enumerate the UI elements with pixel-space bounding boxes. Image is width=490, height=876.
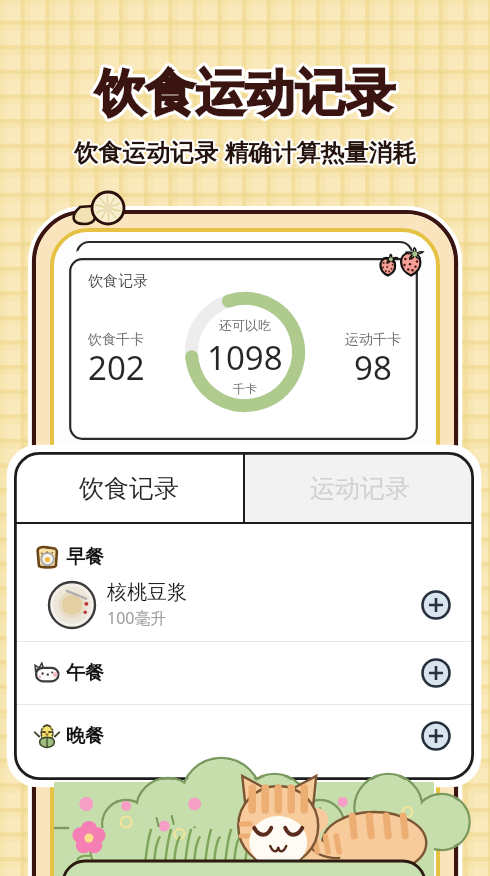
- staticText: 饮食运动记录: [98, 62, 398, 125]
- staticText: 饮食运动记录: [92, 62, 392, 125]
- staticText: 202: [88, 345, 145, 390]
- staticText: 饮食运动记录: [95, 62, 395, 125]
- staticText: 饮食运动记录: [93, 64, 393, 127]
- staticText: 饮食运动记录: [95, 60, 395, 123]
- staticText: 运动记录: [310, 473, 410, 504]
- staticText: 饮食运动记录 精确计算热量消耗: [74, 135, 417, 168]
- staticText: 饮食运动记录 精确计算热量消耗: [74, 137, 417, 170]
- button[interactable]: 核桃豆浆: [48, 573, 452, 636]
- staticText: 饮食运动记录 精确计算热量消耗: [74, 135, 417, 168]
- staticText: 饮食运动记录: [97, 62, 397, 125]
- staticText: 饮食运动记录: [95, 62, 395, 125]
- staticText: 还可以吃: [219, 317, 271, 333]
- staticText: 饮食运动记录 精确计算热量消耗: [74, 134, 417, 167]
- staticText: 饮食运动记录 精确计算热量消耗: [73, 136, 416, 169]
- staticText: 饮食运动记录: [95, 64, 395, 127]
- button[interactable]: Add: [420, 657, 452, 689]
- staticText: 运动千卡: [345, 331, 401, 349]
- staticText: 饮食运动记录: [97, 63, 397, 126]
- staticText: 饮食运动记录: [96, 61, 396, 124]
- staticText: 饮食记录: [88, 272, 148, 291]
- staticText: 1098: [207, 335, 283, 380]
- staticText: 晚餐: [66, 724, 104, 748]
- staticText: 饮食运动记录 精确计算热量消耗: [75, 134, 418, 167]
- staticText: 饮食运动记录: [93, 60, 393, 123]
- staticText: 饮食运动记录: [95, 65, 395, 128]
- staticText: 饮食运动记录 精确计算热量消耗: [72, 135, 415, 168]
- staticText: 饮食运动记录: [96, 62, 396, 125]
- button[interactable]: 运动记录: [245, 452, 474, 522]
- staticText: 饮食运动记录: [95, 61, 395, 124]
- staticText: 饮食运动记录 精确计算热量消耗: [73, 134, 416, 167]
- staticText: 饮食运动记录: [96, 63, 396, 126]
- staticText: 饮食运动记录: [97, 61, 397, 124]
- staticText: 饮食运动记录: [94, 62, 394, 125]
- staticText: 饮食运动记录 精确计算热量消耗: [74, 136, 417, 169]
- staticText: 饮食运动记录 精确计算热量消耗: [75, 136, 418, 169]
- button[interactable]: Add: [420, 720, 452, 752]
- staticText: 饮食运动记录: [93, 63, 393, 126]
- staticText: 饮食运动记录: [93, 61, 393, 124]
- staticText: 早餐: [66, 545, 104, 569]
- staticText: 核桃豆浆: [107, 580, 187, 605]
- staticText: 饮食千卡: [88, 331, 144, 349]
- staticText: 饮食运动记录: [94, 60, 394, 123]
- button[interactable]: 饮食记录: [14, 452, 243, 522]
- button[interactable]: 午餐: [34, 642, 452, 704]
- staticText: 饮食记录: [79, 473, 179, 504]
- staticText: 午餐: [66, 661, 104, 685]
- staticText: 98: [354, 345, 392, 390]
- staticText: 饮食运动记录: [95, 63, 395, 126]
- staticText: 100毫升: [107, 607, 167, 629]
- staticText: 饮食运动记录 精确计算热量消耗: [74, 133, 417, 166]
- staticText: 千卡: [233, 381, 257, 396]
- staticText: 饮食运动记录: [94, 64, 394, 127]
- staticText: 饮食运动记录: [97, 60, 397, 123]
- staticText: 饮食运动记录 精确计算热量消耗: [75, 135, 418, 168]
- staticText: 饮食运动记录: [94, 61, 394, 124]
- staticText: 饮食运动记录 精确计算热量消耗: [73, 135, 416, 168]
- staticText: 饮食运动记录 精确计算热量消耗: [76, 135, 419, 168]
- staticText: 饮食运动记录: [97, 64, 397, 127]
- staticText: 饮食运动记录: [96, 60, 396, 123]
- staticText: 饮食运动记录: [94, 63, 394, 126]
- staticText: 饮食运动记录: [96, 64, 396, 127]
- button[interactable]: Add: [420, 589, 452, 621]
- button[interactable]: 晚餐: [34, 705, 452, 767]
- staticText: 饮食运动记录: [95, 59, 395, 122]
- staticText: 饮食运动记录: [93, 62, 393, 125]
